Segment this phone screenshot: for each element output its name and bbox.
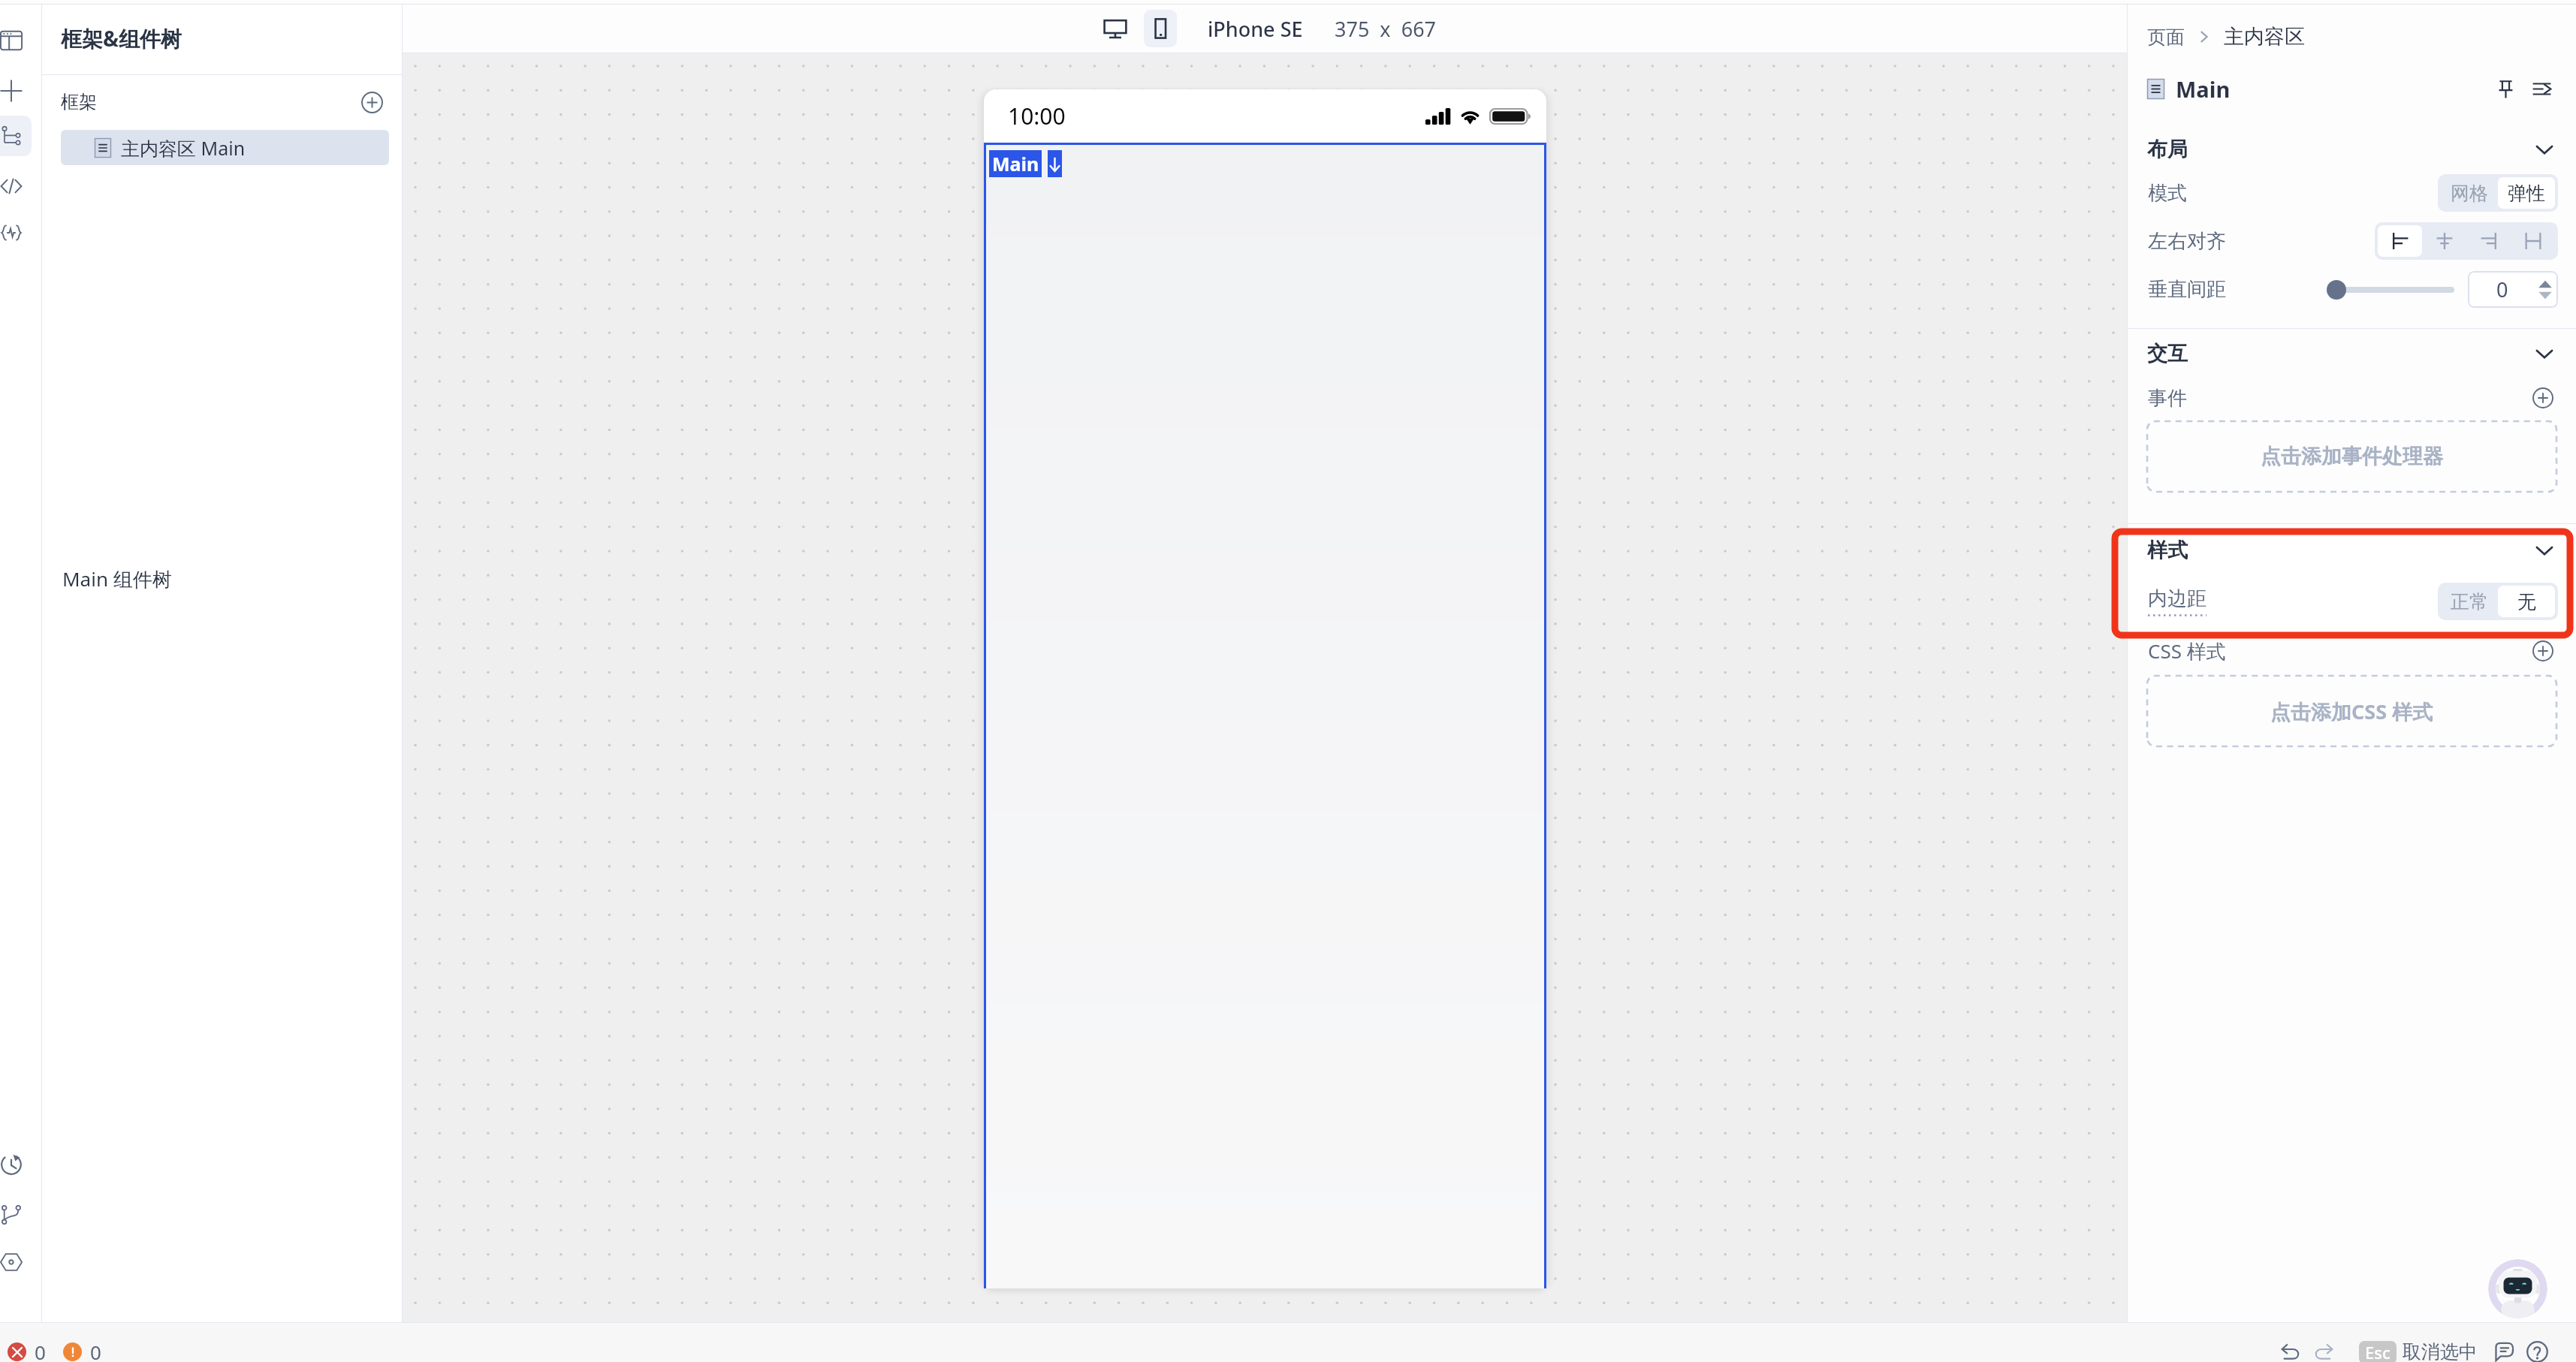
staticText: iPhone SE — [1208, 15, 1303, 43]
staticText: Main — [2176, 74, 2231, 104]
button[interactable]: Desktop preview — [1099, 10, 1132, 47]
staticText: 框架&组件树 — [61, 24, 182, 53]
button[interactable]: 正常 — [2441, 586, 2498, 617]
staticText: 0 — [2496, 276, 2508, 303]
staticText: CSS 样式 — [2148, 637, 2226, 664]
button[interactable]: Esc — [2359, 1340, 2478, 1362]
staticText: Main 组件树 — [62, 565, 172, 592]
staticText: 10:00 — [1008, 101, 1066, 131]
button[interactable]: 网格 — [2441, 177, 2498, 209]
staticText: 样式 — [2147, 538, 2188, 563]
button[interactable]: Version branches — [0, 1195, 32, 1235]
button[interactable]: Space between — [2511, 225, 2555, 257]
button[interactable]: Align left — [2378, 225, 2422, 257]
button[interactable]: History — [0, 1144, 32, 1185]
staticText: 正常 — [2451, 590, 2488, 613]
staticText: 主内容区 — [2224, 24, 2305, 50]
staticText: 左右对齐 — [2148, 229, 2226, 254]
button[interactable]: Component tree — [0, 116, 32, 156]
staticText: 0 — [35, 1339, 46, 1362]
button[interactable]: Script — [0, 212, 32, 253]
staticText: 事件 — [2148, 386, 2187, 411]
button[interactable]: Publish — [0, 1242, 32, 1282]
button[interactable]: Add component — [0, 71, 32, 111]
staticText: Esc — [2365, 1341, 2390, 1362]
button[interactable]: AI assistant — [2488, 1259, 2547, 1318]
button[interactable]: Pages — [0, 20, 32, 61]
button[interactable]: Undo — [2274, 1335, 2307, 1362]
button[interactable]: Align right — [2466, 225, 2511, 257]
staticText: 无 — [2517, 590, 2536, 613]
button[interactable]: 0 — [63, 1339, 101, 1362]
button[interactable]: 0 — [2468, 271, 2558, 308]
staticText: 点击添加CSS 样式 — [2270, 698, 2433, 725]
button[interactable]: 主内容区 Main — [61, 130, 389, 165]
staticText: 0 — [90, 1339, 101, 1362]
staticText: 点击添加事件处理器 — [2261, 444, 2443, 469]
staticText: Main — [992, 151, 1039, 176]
button[interactable]: 样式 — [2147, 530, 2553, 571]
button[interactable]: Add frame — [357, 87, 387, 117]
staticText: 模式 — [2148, 181, 2187, 206]
button[interactable]: Feedback — [2487, 1335, 2520, 1362]
staticText: 网格 — [2451, 182, 2488, 205]
staticText: 页面 — [2147, 26, 2185, 49]
staticText: 布局 — [2147, 137, 2188, 162]
button[interactable]: 0 — [8, 1339, 46, 1362]
staticText: 主内容区 Main — [121, 135, 246, 161]
button[interactable]: Pin panel — [2489, 72, 2522, 105]
button[interactable]: Help — [2520, 1335, 2553, 1362]
button[interactable]: 交互 — [2147, 333, 2553, 374]
button[interactable]: 点击添加事件处理器 — [2147, 421, 2556, 492]
button[interactable]: Collapse panel — [2525, 72, 2558, 105]
button[interactable]: Vertical gap slider — [2327, 277, 2451, 303]
button[interactable]: Code — [0, 166, 32, 206]
staticText: 取消选中 — [2403, 1340, 2478, 1362]
button[interactable]: 弹性 — [2498, 177, 2555, 209]
staticText: 垂直间距 — [2148, 277, 2226, 302]
staticText: 375 x 667 — [1335, 15, 1437, 43]
button[interactable]: 点击添加CSS 样式 — [2147, 676, 2556, 746]
staticText: 内边距 — [2148, 586, 2206, 611]
staticText: 弹性 — [2508, 182, 2545, 205]
button[interactable]: Align center — [2422, 225, 2466, 257]
button[interactable]: Mobile preview — [1144, 10, 1177, 47]
button[interactable]: 布局 — [2147, 129, 2553, 170]
button[interactable]: Add CSS style — [2528, 636, 2558, 666]
staticText: 框架 — [61, 91, 97, 113]
button[interactable]: Redo — [2307, 1335, 2340, 1362]
staticText: 交互 — [2147, 341, 2188, 366]
button[interactable]: Move down — [1048, 150, 1062, 177]
button[interactable]: 无 — [2498, 586, 2555, 617]
button[interactable]: Add event handler — [2528, 383, 2558, 413]
